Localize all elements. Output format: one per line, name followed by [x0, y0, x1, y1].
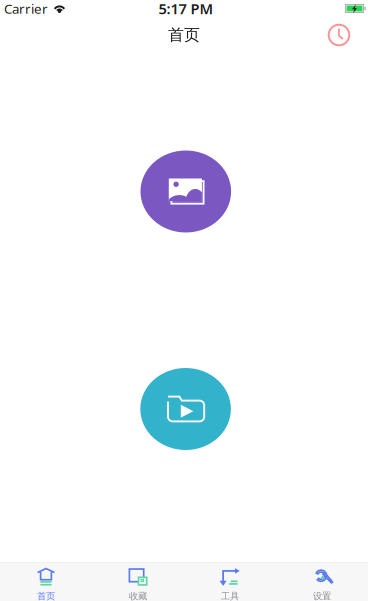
- button[interactable]: History: [317, 18, 361, 52]
- button[interactable]: Photos: [140, 150, 231, 232]
- button[interactable]: Videos: [140, 368, 231, 450]
- button[interactable]: 收藏: [92, 562, 184, 601]
- staticText: Carrier: [4, 0, 48, 17]
- button[interactable]: 工具: [184, 562, 276, 601]
- staticText: 设置: [313, 590, 331, 601]
- staticText: 首页: [168, 25, 200, 45]
- button[interactable]: 设置: [276, 562, 368, 601]
- staticText: 5:17 PM: [158, 0, 213, 18]
- button[interactable]: 首页: [0, 562, 92, 601]
- staticText: 工具: [221, 590, 239, 601]
- staticText: 首页: [37, 590, 55, 601]
- staticText: 收藏: [129, 590, 147, 601]
